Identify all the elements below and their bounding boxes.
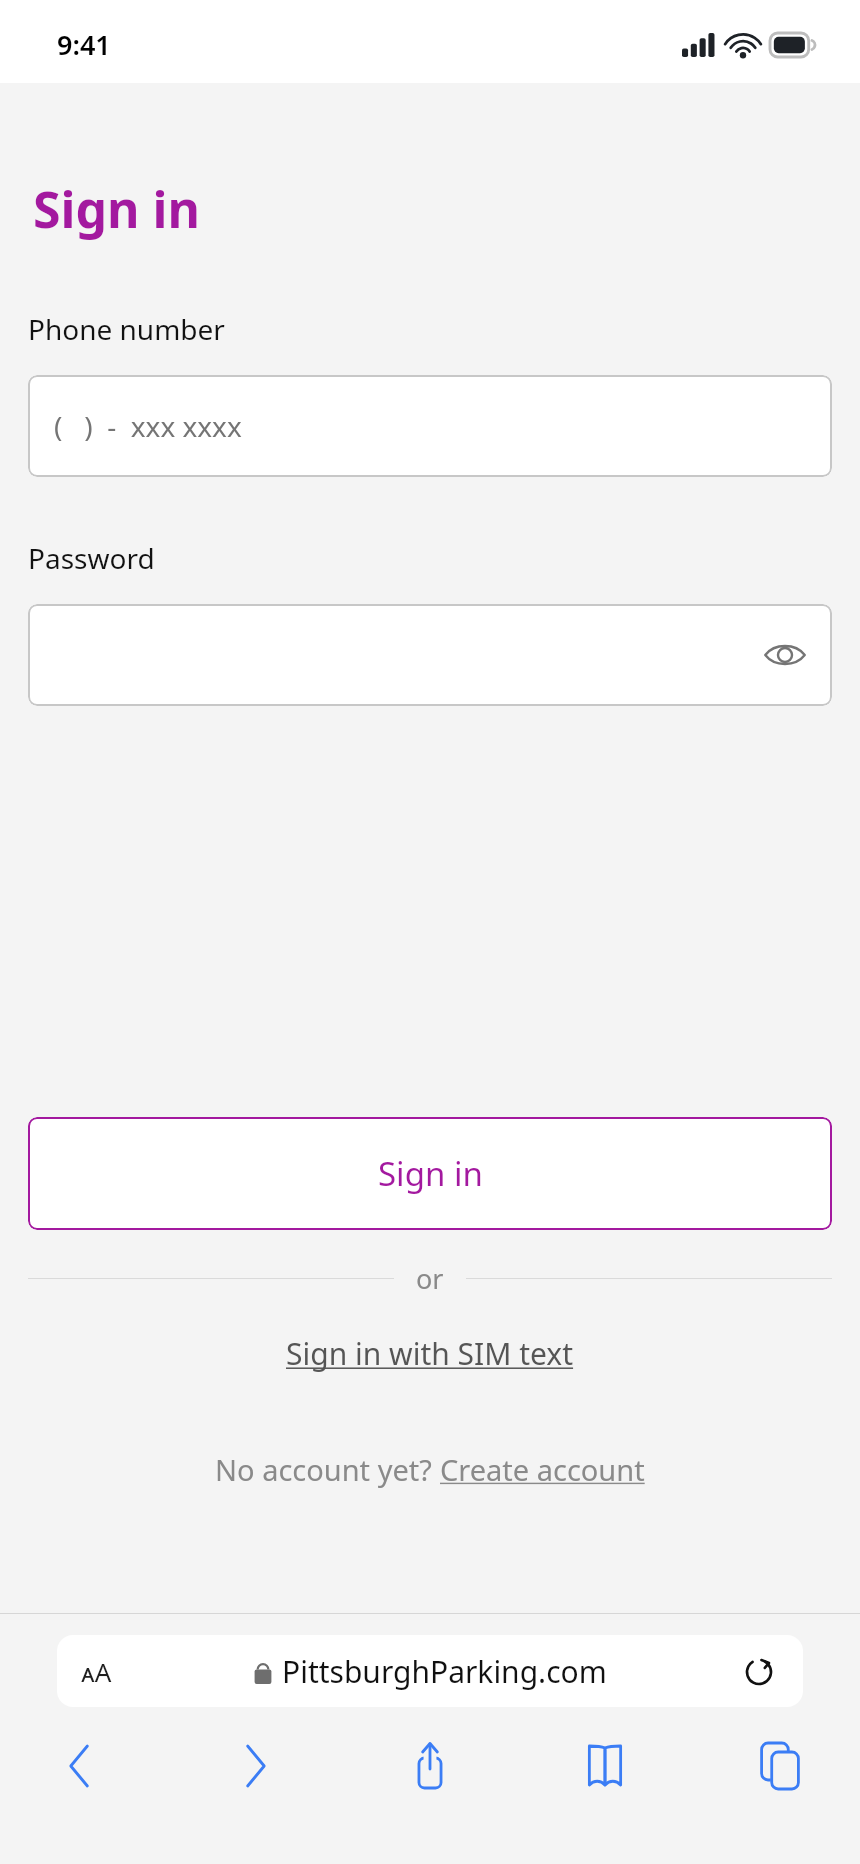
button[interactable]: Tabs (724, 1741, 836, 1821)
button[interactable]: Bookmarks (549, 1741, 661, 1821)
button[interactable]: Forward (199, 1741, 311, 1821)
button[interactable]: Show password (28, 604, 832, 706)
button[interactable]: Share (374, 1741, 486, 1821)
staticText: or (416, 1260, 444, 1297)
staticText: Phone number (28, 310, 225, 348)
staticText: Password (28, 539, 155, 577)
button[interactable]: Back (24, 1741, 136, 1821)
staticText: ( ) - xxx xxxx (54, 407, 242, 445)
staticText: PittsburghParking.com (282, 1651, 607, 1692)
staticText: Sign in (33, 175, 201, 243)
staticText: No account yet? (215, 1450, 440, 1489)
staticText: ᴀA (81, 1654, 112, 1689)
staticText: Sign in (378, 1151, 483, 1196)
button[interactable]: Reload (735, 1647, 783, 1695)
staticText: 9:41 (57, 26, 111, 63)
button[interactable]: Create account (440, 1446, 645, 1493)
button[interactable]: ᴀA (57, 1635, 803, 1707)
button[interactable]: Sign in (28, 1117, 832, 1230)
button[interactable]: Sign in with SIM text (276, 1327, 584, 1380)
button[interactable]: Show password (756, 626, 814, 684)
button[interactable]: ( ) - xxx xxxx (28, 375, 832, 477)
